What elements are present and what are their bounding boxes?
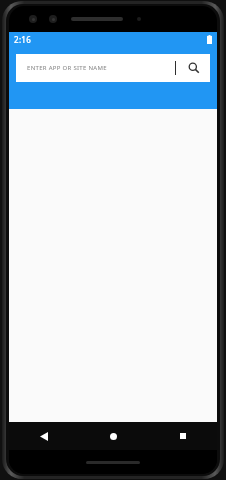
button[interactable]: Search [184,58,204,78]
button[interactable]: ENTER APP OR SITE NAME [16,54,210,82]
button[interactable]: Back [9,422,79,450]
button[interactable]: Recent apps [148,422,217,450]
staticText: ENTER APP OR SITE NAME [27,64,107,72]
staticText: 2:16 [14,34,32,45]
button[interactable]: Home [79,422,148,450]
